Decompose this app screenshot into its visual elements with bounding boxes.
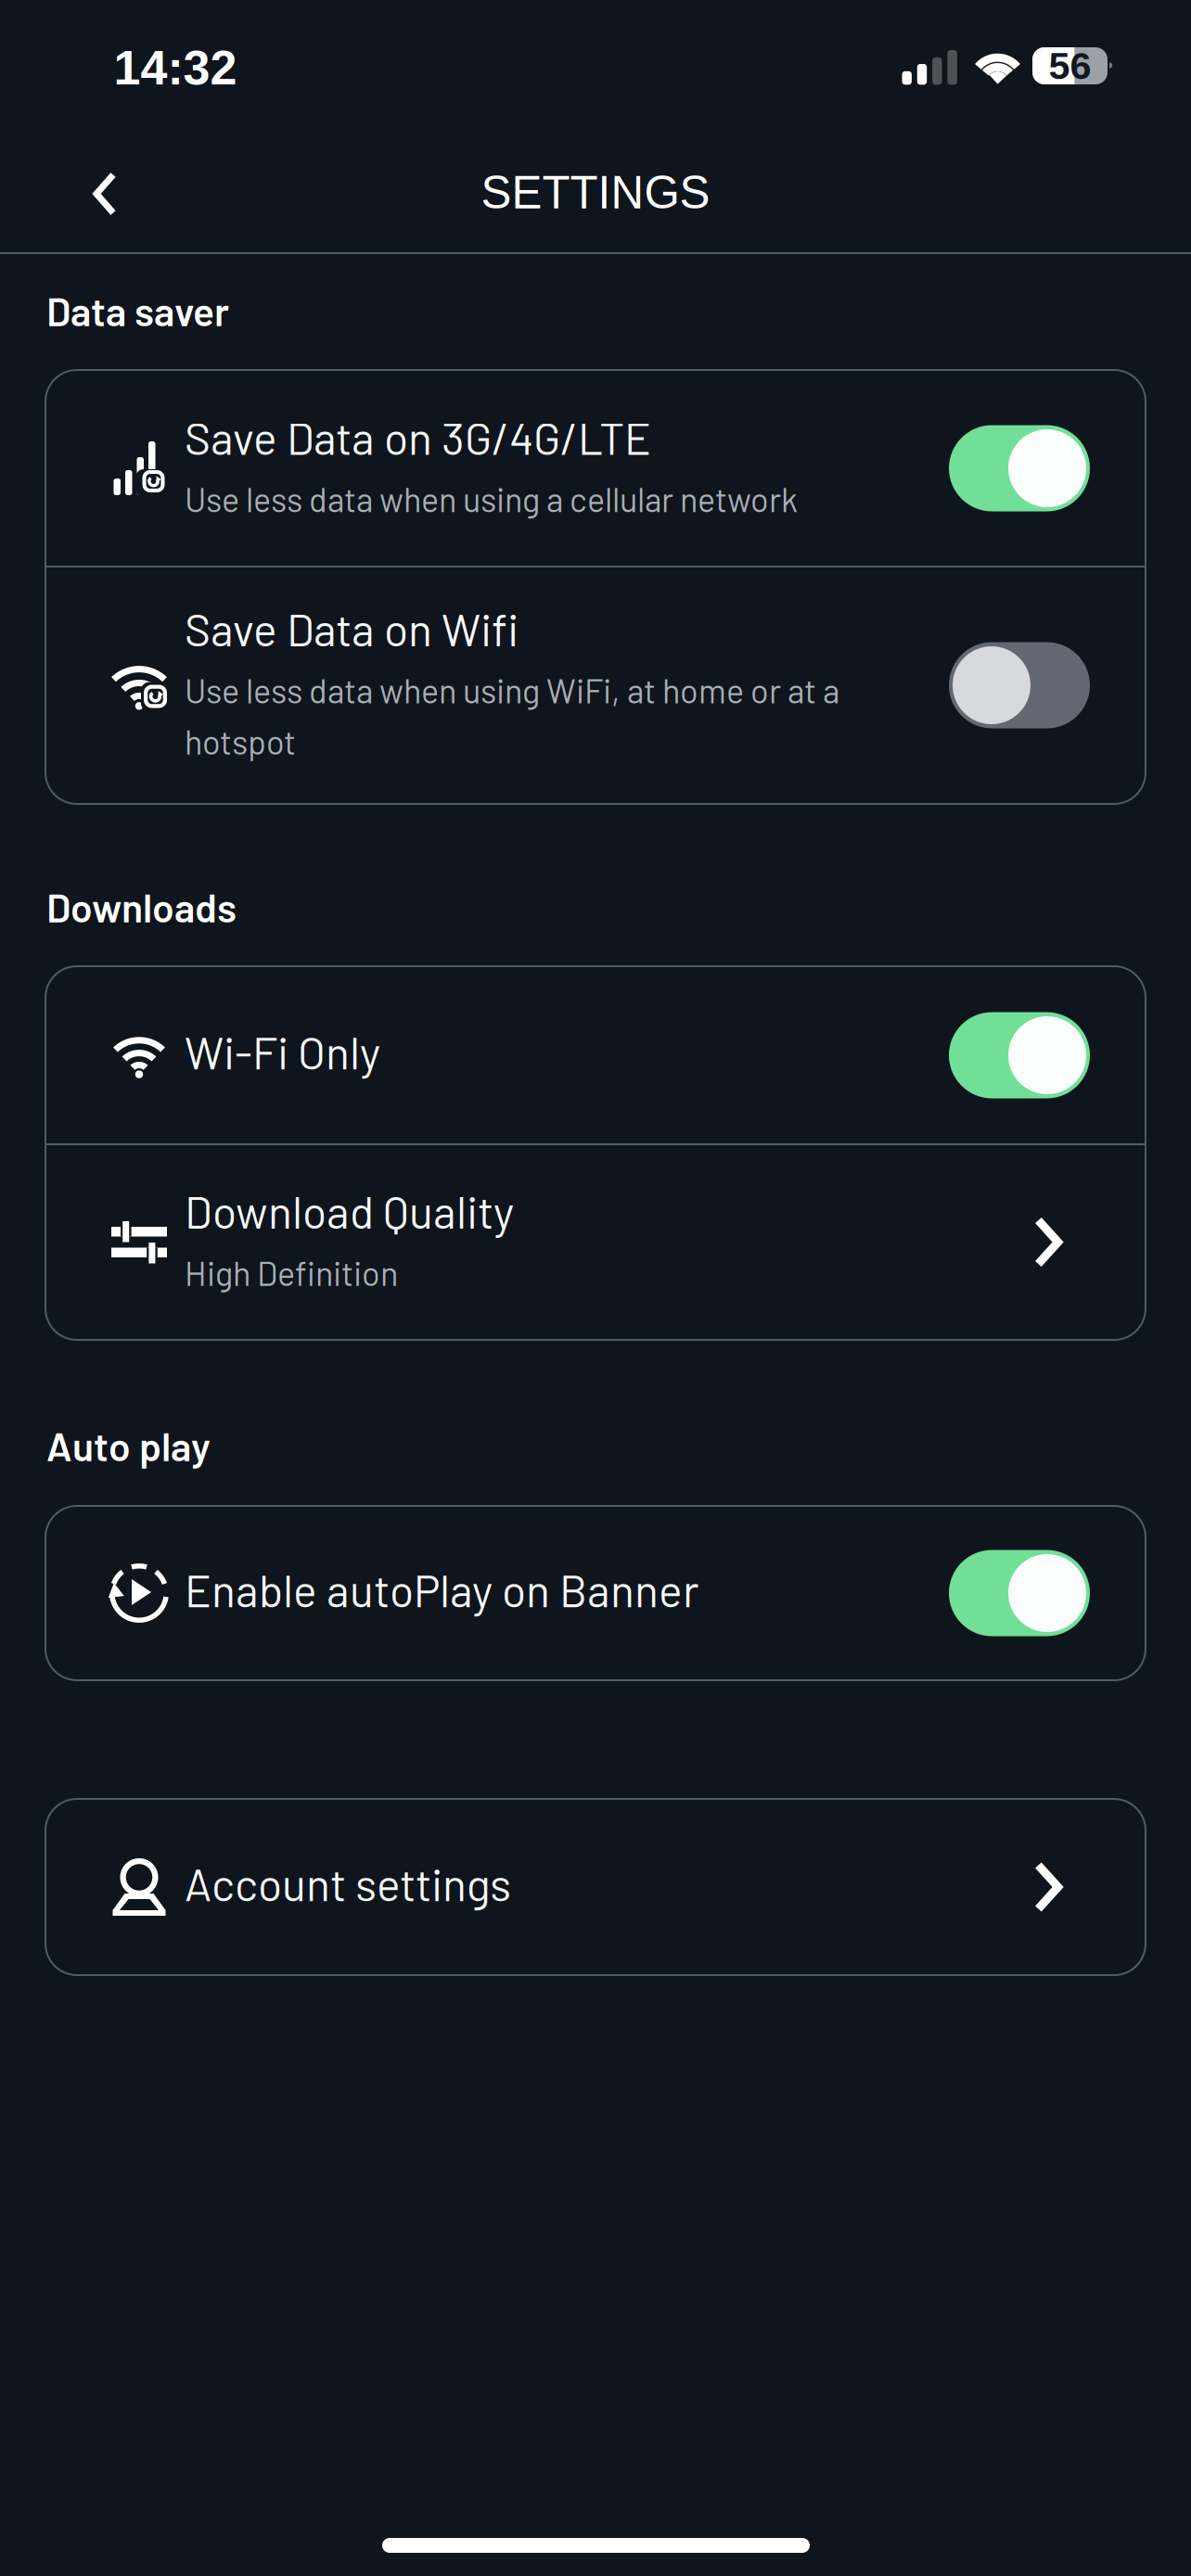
button[interactable]: Back: [51, 142, 159, 246]
staticText: Account settings: [185, 1857, 511, 1910]
staticText: Download Quality: [185, 1184, 514, 1238]
staticText: Wi-Fi Only: [185, 1025, 380, 1078]
button[interactable]: Enable autoPlay on Banner: [45, 1506, 1146, 1680]
staticText: 56: [1049, 44, 1091, 87]
staticText: Save Data on Wifi: [185, 602, 519, 655]
staticText: Auto play: [46, 1422, 211, 1469]
staticText: High Definition: [185, 1252, 398, 1293]
staticText: SETTINGS: [481, 167, 710, 218]
button[interactable]: Account settings: [45, 1799, 1146, 1975]
staticText: Save Data on 3G/4G/LTE: [185, 410, 651, 464]
staticText: 14:32: [114, 41, 237, 95]
button[interactable]: Download Quality: [45, 1144, 1146, 1340]
button[interactable]: Save Data on 3G/4G/LTE: [45, 370, 1146, 567]
staticText: Use less data when using WiFi, at home o…: [185, 670, 839, 761]
staticText: Use less data when using a cellular netw…: [185, 479, 798, 519]
staticText: Enable autoPlay on Banner: [185, 1563, 698, 1616]
button[interactable]: Save Data on Wifi: [45, 567, 1146, 804]
staticText: Data saver: [46, 287, 229, 334]
staticText: Downloads: [46, 883, 237, 930]
button[interactable]: Wi-Fi Only: [45, 966, 1146, 1144]
